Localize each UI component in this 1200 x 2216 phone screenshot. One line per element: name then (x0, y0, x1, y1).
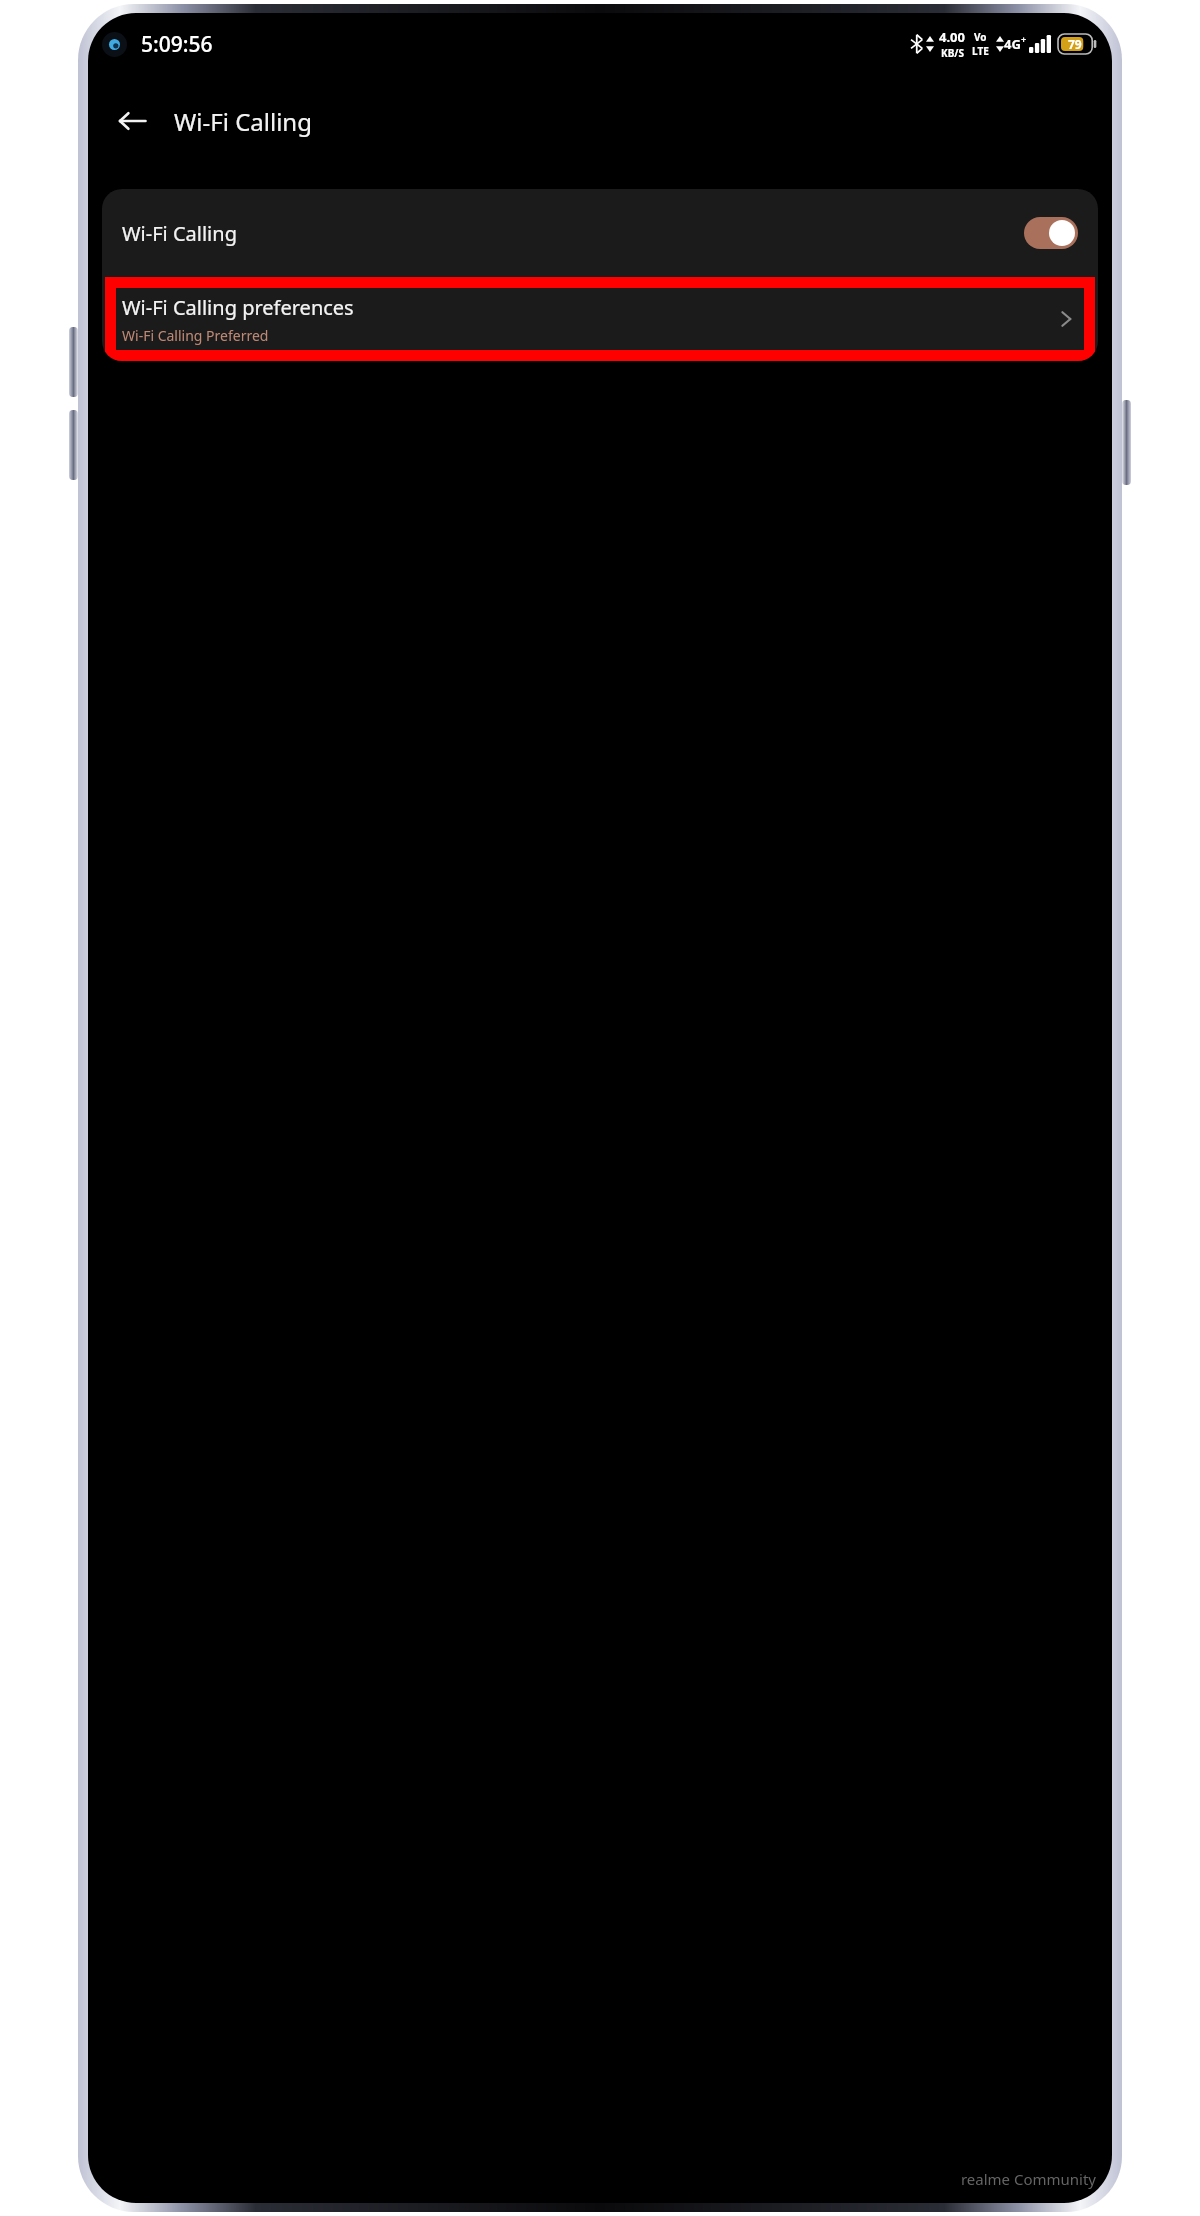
staticText: LTE (972, 44, 989, 58)
staticText: realme Community (960, 2169, 1096, 2189)
button[interactable]: Wi-Fi Calling preferences (105, 277, 1095, 361)
staticText: Vo (974, 30, 987, 44)
staticText: KB/S (941, 46, 964, 60)
button[interactable]: Wi-Fi Calling (102, 189, 1098, 277)
staticText: Wi-Fi Calling Preferred (122, 326, 269, 345)
button[interactable]: Wi-Fi Calling toggle (1024, 217, 1078, 249)
button[interactable]: Back (108, 97, 156, 145)
staticText: 5:09:56 (141, 30, 213, 59)
staticText: Wi-Fi Calling preferences (122, 294, 354, 321)
staticText: Wi-Fi Calling (174, 105, 312, 138)
staticText: 4.00 (939, 28, 965, 46)
staticText: 79 (1068, 36, 1082, 52)
staticText: Wi-Fi Calling (122, 220, 1024, 247)
staticText: 4G (1004, 35, 1021, 53)
staticText: + (1021, 33, 1027, 45)
